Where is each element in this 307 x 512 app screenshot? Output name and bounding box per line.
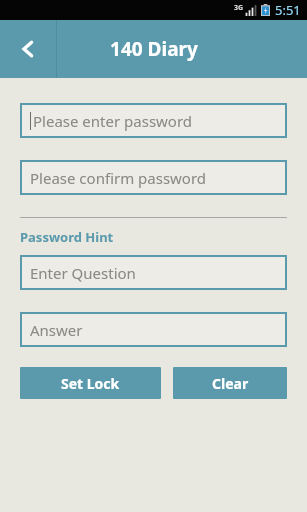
button[interactable]: Back [0,20,56,78]
staticText: Set Lock [61,374,120,393]
staticText: 3G [234,3,244,13]
button[interactable]: Please enter password [20,103,287,138]
staticText: 5:51 [275,1,301,19]
button[interactable]: Clear [173,367,287,399]
staticText: Answer [30,320,83,340]
button[interactable]: Enter Question [20,255,287,290]
button[interactable]: Please confirm password [20,160,287,195]
staticText: Clear [212,374,249,393]
button[interactable]: Answer [20,312,287,347]
staticText: 140 Diary [110,36,198,62]
staticText: Enter Question [30,263,136,283]
staticText: Password Hint [20,228,114,246]
staticText: Please enter password [33,111,193,131]
button[interactable]: Set Lock [20,367,161,399]
staticText: Please confirm password [30,168,207,188]
